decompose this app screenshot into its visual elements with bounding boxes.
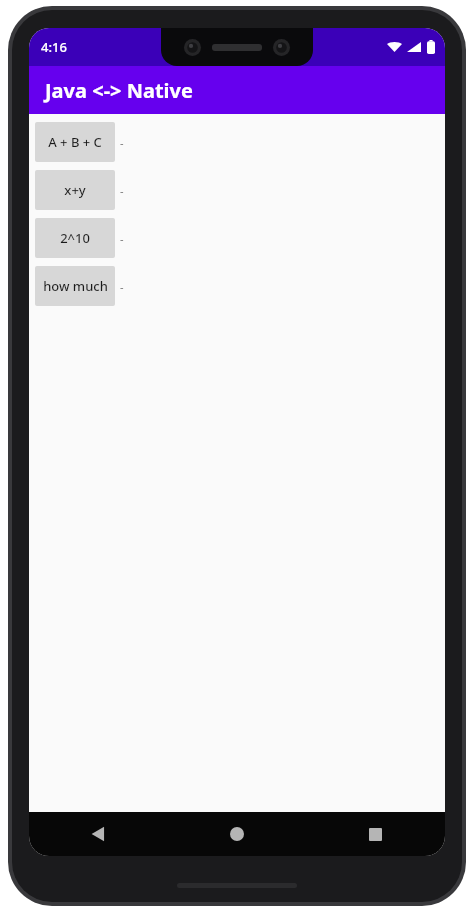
button[interactable]: 2^10 (35, 218, 115, 258)
button[interactable]: Back (29, 812, 167, 856)
button[interactable]: Recent apps (306, 812, 445, 856)
staticText: - (120, 183, 124, 198)
staticText: Java <-> Native (45, 77, 193, 104)
staticText: A + B + C (48, 133, 102, 151)
button[interactable]: A + B + C (35, 122, 115, 162)
button[interactable]: x+y (35, 170, 115, 210)
staticText: - (120, 135, 124, 150)
button[interactable]: how much (35, 266, 115, 306)
staticText: how much (43, 277, 108, 295)
staticText: - (120, 279, 124, 294)
staticText: - (120, 231, 124, 246)
staticText: 4:16 (41, 38, 67, 56)
staticText: x+y (64, 181, 86, 199)
staticText: 2^10 (60, 229, 90, 247)
button[interactable]: Home (167, 812, 306, 856)
